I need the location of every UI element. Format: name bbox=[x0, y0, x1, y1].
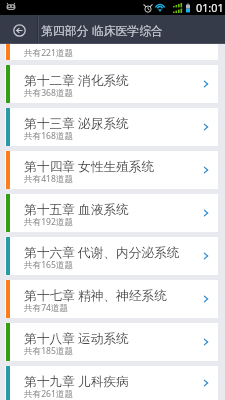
button[interactable]: 第十七章 精神、神经系统 bbox=[5, 280, 218, 318]
button[interactable]: 第十二章 消化系统 bbox=[5, 65, 218, 103]
staticText: 第十四章 女性生殖系统 bbox=[24, 157, 155, 174]
button[interactable]: 第十九章 儿科疾病 bbox=[5, 366, 218, 400]
button[interactable]: 第十八章 运动系统 bbox=[5, 323, 218, 361]
staticText: 第十二章 消化系统 bbox=[24, 71, 129, 88]
staticText: 共有418道题 bbox=[24, 173, 74, 185]
button[interactable]: Back bbox=[0, 15, 37, 44]
staticText: 第十六章 代谢、内分泌系统 bbox=[24, 243, 180, 260]
staticText: 第十五章 血液系统 bbox=[24, 200, 129, 217]
button[interactable]: 共有221道题 bbox=[5, 44, 218, 60]
staticText: 共有74道题 bbox=[24, 302, 69, 314]
button[interactable]: 第十五章 血液系统 bbox=[5, 194, 218, 232]
button[interactable]: 第十三章 泌尿系统 bbox=[5, 108, 218, 146]
staticText: 第十三章 泌尿系统 bbox=[24, 114, 129, 131]
staticText: 01:01 bbox=[196, 0, 224, 15]
staticText: 共有168道题 bbox=[24, 130, 74, 142]
staticText: 第十八章 运动系统 bbox=[24, 329, 129, 346]
staticText: 共有192道题 bbox=[24, 216, 74, 228]
button[interactable]: 第十六章 代谢、内分泌系统 bbox=[5, 237, 218, 275]
staticText: 第四部分 临床医学综合 bbox=[41, 22, 163, 38]
staticText: 第十九章 儿科疾病 bbox=[24, 372, 129, 389]
staticText: 共有221道题 bbox=[24, 47, 74, 59]
staticText: 共有185道题 bbox=[24, 345, 74, 357]
staticText: 共有261道题 bbox=[24, 388, 74, 400]
button[interactable]: 第十四章 女性生殖系统 bbox=[5, 151, 218, 189]
staticText: 共有165道题 bbox=[24, 259, 74, 271]
staticText: 共有368道题 bbox=[24, 87, 74, 99]
staticText: 第十七章 精神、神经系统 bbox=[24, 286, 167, 303]
